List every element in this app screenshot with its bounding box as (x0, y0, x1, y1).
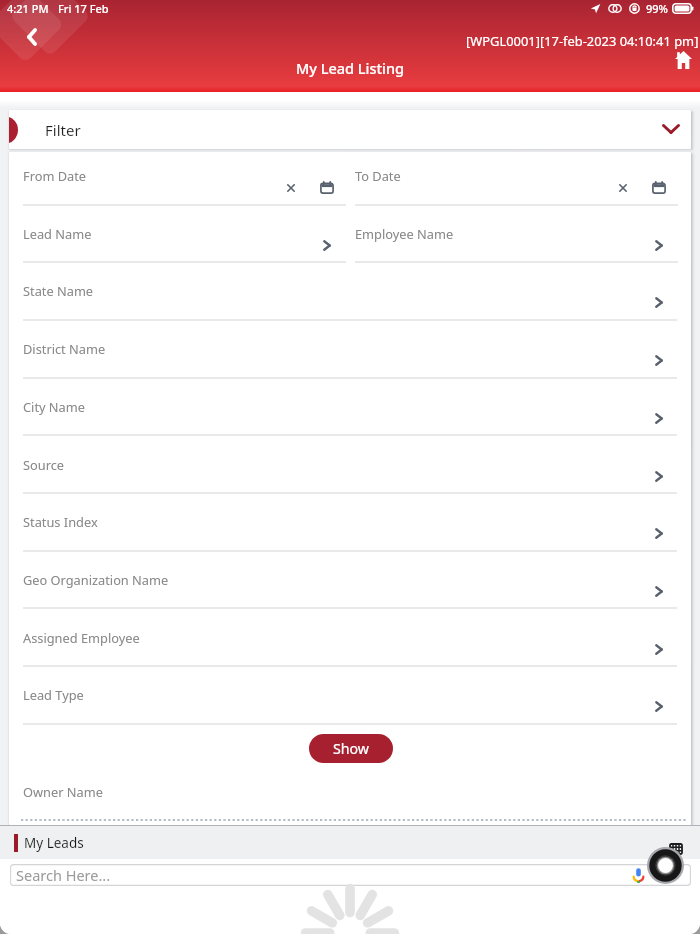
staticText: State Name (23, 282, 94, 299)
button[interactable]: Lead Type (23, 671, 677, 725)
staticText: My Leads (24, 834, 84, 852)
other: Clear date (619, 184, 627, 192)
other: Pick date (320, 181, 334, 194)
staticText: District Name (23, 340, 106, 357)
button[interactable]: Source (23, 441, 677, 495)
button[interactable]: State Name (23, 267, 677, 321)
staticText: Owner Name (23, 783, 103, 800)
staticText: Show (333, 739, 370, 758)
staticText: Search Here... (16, 865, 111, 885)
button[interactable]: Filter (9, 110, 691, 149)
button[interactable]: Show (309, 734, 393, 763)
button[interactable]: Status Index (23, 498, 677, 552)
staticText: To Date (355, 167, 401, 184)
button[interactable]: Home (670, 47, 696, 73)
button[interactable]: Employee Name (355, 210, 678, 264)
staticText: City Name (23, 398, 85, 415)
staticText: Source (23, 456, 65, 473)
staticText: From Date (23, 167, 87, 184)
button[interactable]: Lead Name (23, 210, 346, 264)
staticText: Status Index (23, 513, 98, 530)
staticText: Geo Organization Name (23, 571, 169, 588)
button[interactable]: From Date (23, 152, 346, 206)
button[interactable]: Accessibility menu (647, 847, 684, 884)
other: Pick date (652, 181, 666, 194)
staticText: 4:21 PM (7, 1, 49, 16)
staticText: Employee Name (355, 225, 454, 242)
button[interactable]: Back (13, 18, 51, 56)
button[interactable]: District Name (23, 325, 677, 379)
button[interactable]: Search Here... (10, 864, 691, 886)
other: Clear date (287, 184, 295, 192)
staticText: My Lead Listing (296, 58, 405, 78)
staticText: [WPGL0001][17-feb-2023 04:10:41 pm] (466, 32, 699, 50)
button[interactable]: To Date (355, 152, 678, 206)
staticText: Fri 17 Feb (58, 1, 109, 16)
staticText: Assigned Employee (23, 629, 140, 646)
staticText: Lead Name (23, 225, 92, 242)
button[interactable]: My Leads (0, 826, 700, 859)
button[interactable]: Geo Organization Name (23, 556, 677, 610)
staticText: 99% (646, 1, 668, 16)
staticText: Filter (45, 120, 81, 140)
button[interactable]: Assigned Employee (23, 614, 677, 668)
button[interactable]: City Name (23, 383, 677, 437)
staticText: Lead Type (23, 686, 84, 703)
